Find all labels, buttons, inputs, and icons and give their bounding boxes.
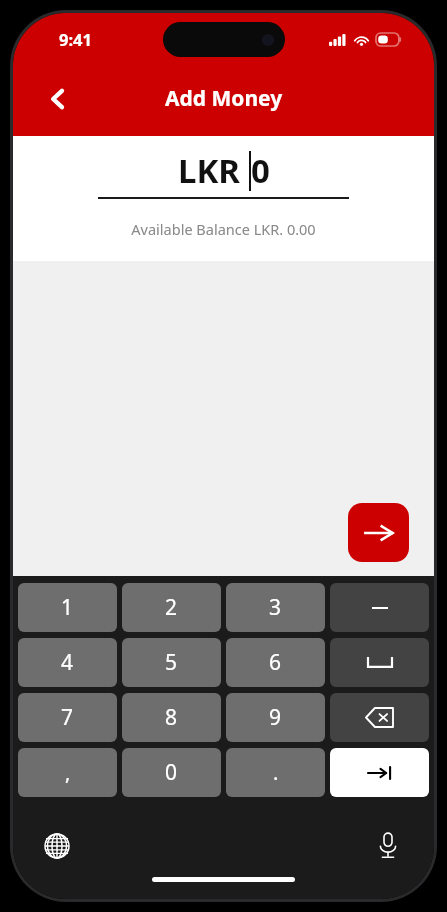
staticText: 4	[61, 648, 74, 677]
button[interactable]: Tab	[330, 748, 429, 797]
staticText: 8	[165, 703, 178, 732]
staticText: 6	[269, 648, 282, 677]
staticText: .	[273, 759, 279, 786]
button[interactable]: Change keyboard language	[37, 826, 77, 866]
staticText: 5	[165, 648, 178, 677]
button[interactable]: 0	[122, 748, 221, 797]
button[interactable]: 4	[18, 638, 117, 687]
button[interactable]: 6	[226, 638, 325, 687]
staticText: 9:41	[59, 28, 92, 50]
button[interactable]: .	[226, 748, 325, 797]
staticText: 3	[269, 593, 282, 622]
staticText: LKR	[178, 148, 249, 193]
button[interactable]: Voice input	[368, 826, 408, 866]
button[interactable]: Minus	[330, 583, 429, 632]
button[interactable]: Back	[35, 76, 81, 122]
button[interactable]: Space	[330, 638, 429, 687]
button[interactable]: ,	[18, 748, 117, 797]
button[interactable]: 9	[226, 693, 325, 742]
staticText: Available Balance LKR. 0.00	[131, 219, 316, 239]
button[interactable]: 5	[122, 638, 221, 687]
staticText: 9	[269, 703, 282, 732]
button[interactable]: Continue	[348, 503, 409, 562]
staticText: 7	[61, 703, 74, 732]
staticText: Add Money	[165, 84, 283, 113]
button[interactable]: 3	[226, 583, 325, 632]
staticText: 0	[251, 148, 270, 193]
button[interactable]: 2	[122, 583, 221, 632]
staticText: 0	[165, 758, 178, 787]
staticText: 1	[61, 593, 74, 622]
button[interactable]: 8	[122, 693, 221, 742]
staticText: ,	[65, 759, 71, 786]
button[interactable]: 7	[18, 693, 117, 742]
button[interactable]: Delete	[330, 693, 429, 742]
staticText: 2	[165, 593, 178, 622]
button[interactable]: 1	[18, 583, 117, 632]
